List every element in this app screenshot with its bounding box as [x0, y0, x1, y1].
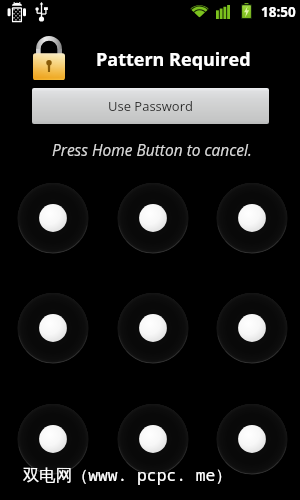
other: Locked — [33, 36, 65, 80]
button[interactable]: Pattern dot 7 — [17, 403, 89, 475]
staticText: 双电网（www. pcpc. me） — [23, 464, 232, 486]
staticText: Press Home Button to cancel. — [52, 139, 252, 160]
staticText: Use Password — [108, 97, 193, 115]
button[interactable]: Pattern dot 3 — [216, 182, 288, 254]
button[interactable]: Pattern dot 8 — [117, 403, 189, 475]
staticText: 18:50 — [261, 3, 296, 21]
button[interactable]: Pattern dot 6 — [216, 292, 288, 364]
button[interactable]: Pattern dot 2 — [117, 182, 189, 254]
button[interactable]: Pattern dot 1 — [17, 182, 89, 254]
button[interactable]: Use Password — [32, 88, 269, 124]
button[interactable]: Pattern dot 9 — [216, 403, 288, 475]
button[interactable]: Pattern dot 4 — [17, 292, 89, 364]
button[interactable]: Pattern dot 5 — [117, 292, 189, 364]
staticText: Pattern Required — [96, 47, 251, 72]
